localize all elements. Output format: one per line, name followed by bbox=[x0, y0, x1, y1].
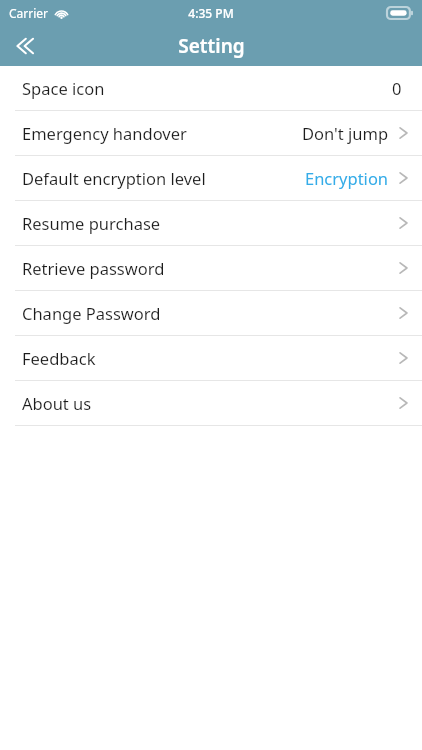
button[interactable]: Space icon bbox=[0, 66, 422, 110]
staticText: 4:35 PM bbox=[188, 5, 234, 21]
staticText: Change Password bbox=[22, 302, 161, 324]
staticText: 0 bbox=[392, 77, 402, 99]
staticText: Emergency handover bbox=[22, 122, 187, 144]
button[interactable]: About us bbox=[0, 381, 422, 425]
staticText: Setting bbox=[178, 33, 245, 59]
staticText: Default encryption level bbox=[22, 167, 206, 189]
staticText: Feedback bbox=[22, 347, 96, 369]
button[interactable]: Default encryption level bbox=[0, 156, 422, 200]
staticText: About us bbox=[22, 392, 92, 414]
button[interactable]: Change Password bbox=[0, 291, 422, 335]
button[interactable]: Retrieve password bbox=[0, 246, 422, 290]
button[interactable]: Resume purchase bbox=[0, 201, 422, 245]
staticText: Retrieve password bbox=[22, 257, 165, 279]
button[interactable]: Feedback bbox=[0, 336, 422, 380]
staticText: Encryption bbox=[305, 167, 389, 189]
staticText: Resume purchase bbox=[22, 212, 161, 234]
staticText: Space icon bbox=[22, 77, 105, 99]
staticText: Don't jump bbox=[302, 122, 389, 144]
button[interactable]: Back bbox=[0, 25, 50, 66]
button[interactable]: Emergency handover bbox=[0, 111, 422, 155]
staticText: Carrier bbox=[9, 5, 49, 21]
